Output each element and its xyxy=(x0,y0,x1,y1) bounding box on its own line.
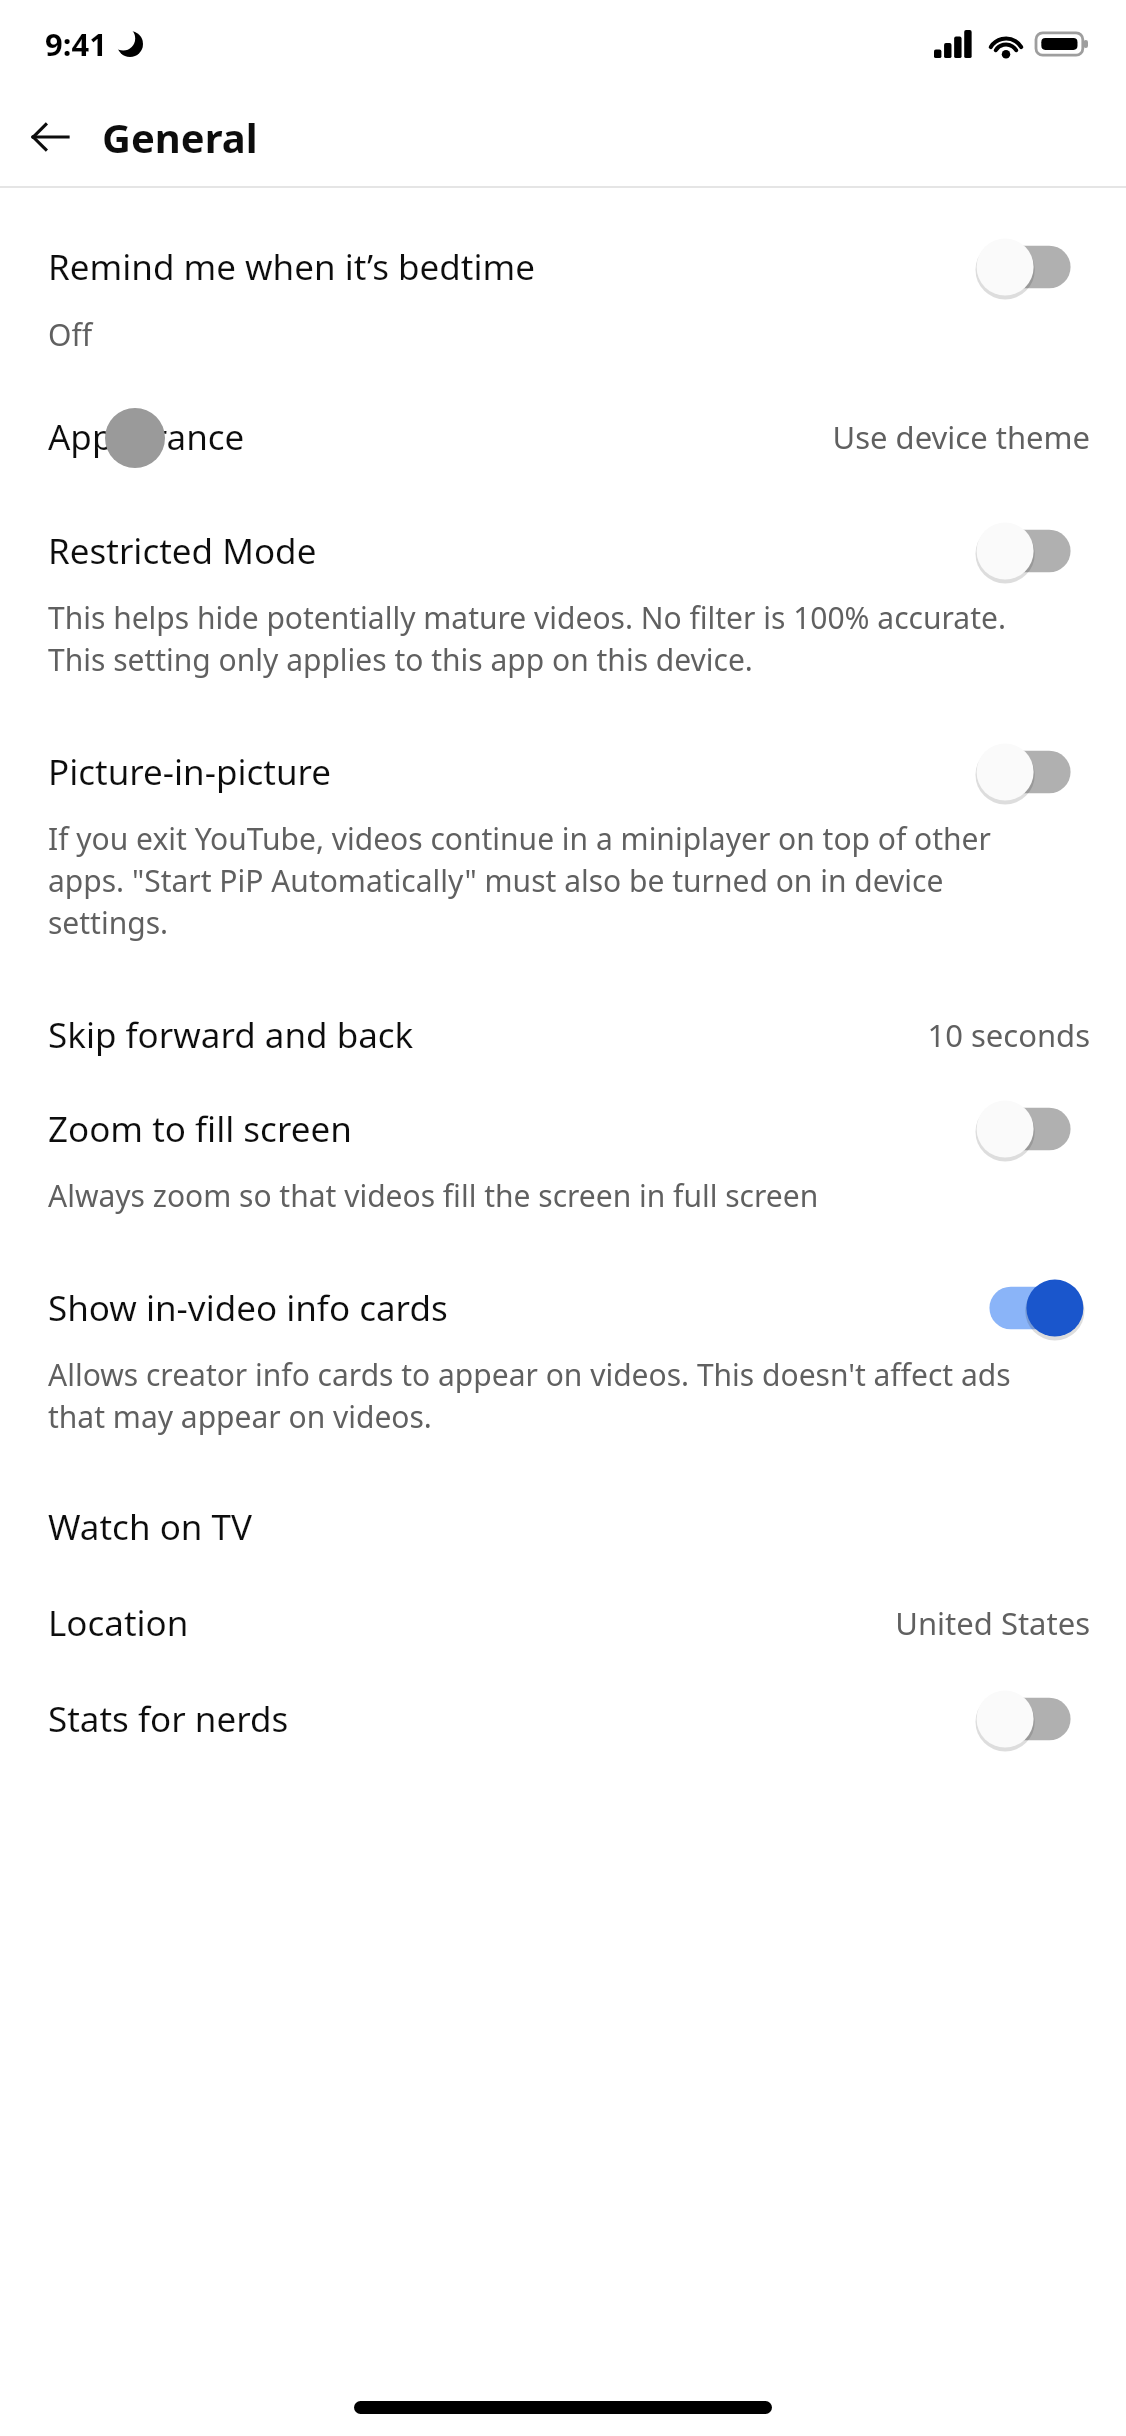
staticText: Appearance xyxy=(48,413,245,461)
button[interactable]: Appearance xyxy=(0,389,1126,485)
staticText: United States xyxy=(895,1602,1090,1644)
button[interactable]: Toggle off xyxy=(970,508,1090,594)
button[interactable]: Toggle off xyxy=(970,1086,1090,1172)
button[interactable]: Stats for nerds xyxy=(0,1671,1126,1767)
staticText: Allows creator info cards to appear on v… xyxy=(48,1354,1066,1437)
button[interactable]: Picture-in-picture xyxy=(0,726,1126,987)
button[interactable]: Skip forward and back xyxy=(0,987,1126,1083)
button[interactable]: Location xyxy=(0,1575,1126,1671)
button[interactable]: Toggle off xyxy=(970,224,1090,310)
staticText: Stats for nerds xyxy=(48,1695,289,1743)
staticText: Location xyxy=(48,1599,189,1647)
staticText: 9:41 xyxy=(45,23,107,65)
staticText: If you exit YouTube, videos continue in … xyxy=(48,818,1066,943)
button[interactable]: Toggle off xyxy=(970,729,1090,815)
staticText: Use device theme xyxy=(832,416,1090,458)
staticText: Watch on TV xyxy=(48,1503,253,1551)
button[interactable]: Show in-video info cards xyxy=(0,1262,1126,1479)
staticText: Always zoom so that videos fill the scre… xyxy=(48,1175,1066,1216)
staticText: Remind me when it’s bedtime xyxy=(48,243,535,291)
button[interactable]: Remind me when it’s bedtime xyxy=(0,220,1126,389)
staticText: Picture-in-picture xyxy=(48,748,332,796)
button[interactable]: Watch on TV xyxy=(0,1479,1126,1575)
button[interactable]: Toggle on xyxy=(970,1265,1090,1351)
button[interactable]: Restricted Mode xyxy=(0,505,1126,726)
staticText: Restricted Mode xyxy=(48,527,317,575)
staticText: Off xyxy=(48,314,1066,355)
button[interactable]: Back xyxy=(14,101,86,173)
button[interactable]: Toggle off xyxy=(970,1676,1090,1762)
staticText: Skip forward and back xyxy=(48,1011,414,1059)
staticText: General xyxy=(102,110,258,164)
staticText: This helps hide potentially mature video… xyxy=(48,597,1066,680)
button[interactable]: Zoom to fill screen xyxy=(0,1083,1126,1262)
staticText: 10 seconds xyxy=(927,1014,1090,1056)
staticText: Show in-video info cards xyxy=(48,1284,448,1332)
staticText: Zoom to fill screen xyxy=(48,1105,352,1153)
